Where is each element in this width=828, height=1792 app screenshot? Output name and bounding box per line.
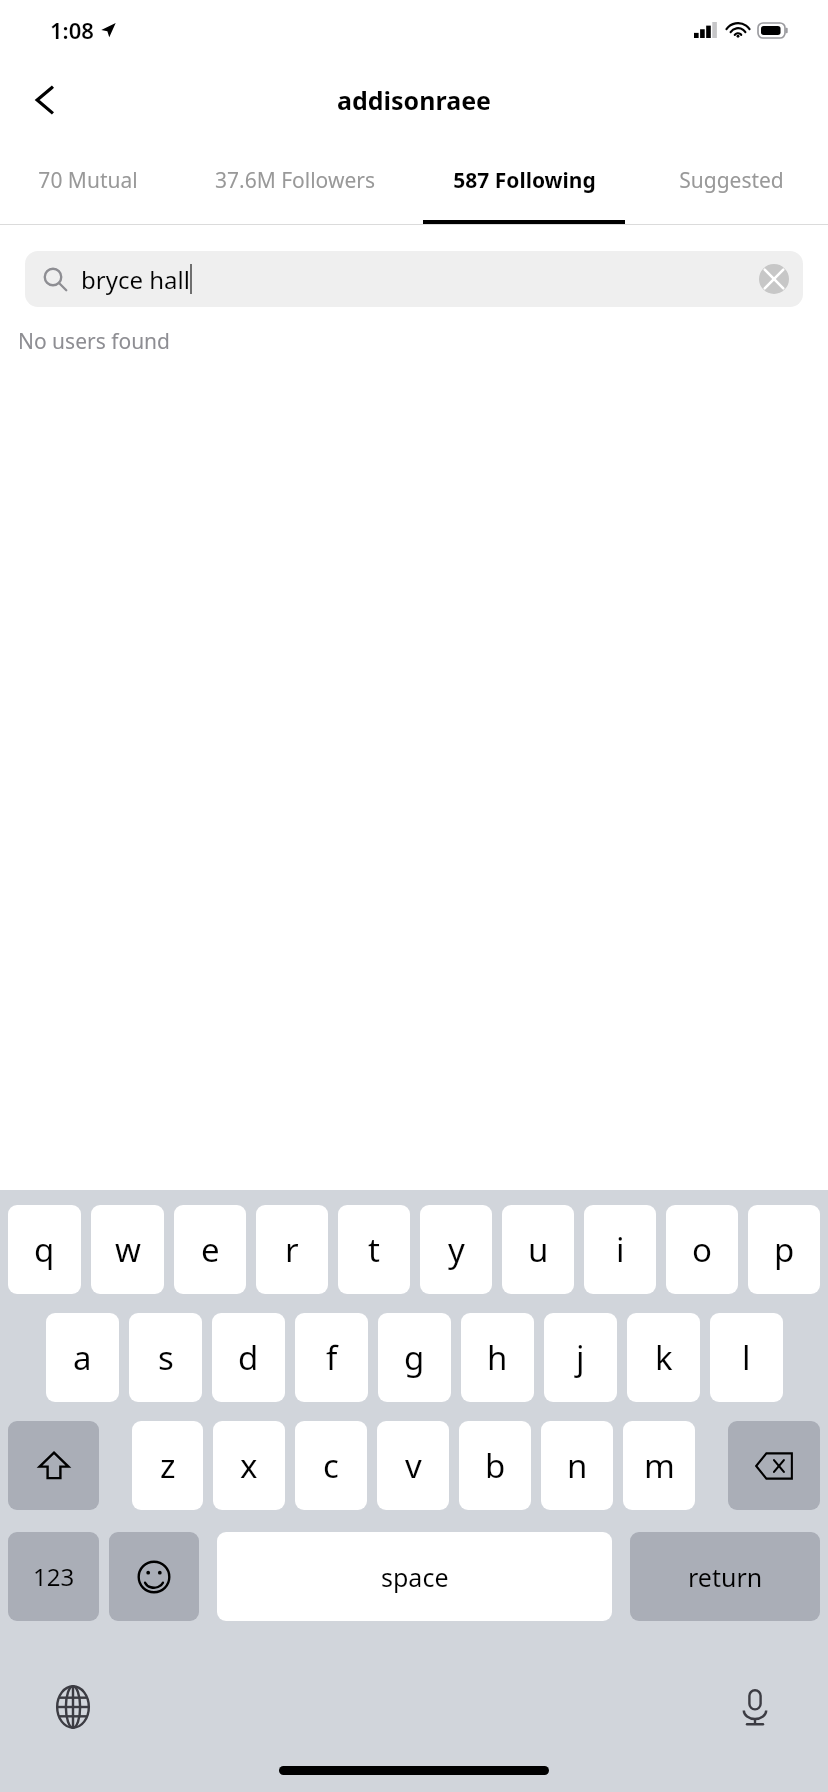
staticText: 37.6M Followers [215, 166, 375, 195]
staticText: y [448, 1227, 465, 1272]
staticText: return [688, 1560, 763, 1594]
button[interactable]: m [623, 1421, 695, 1510]
staticText: w [115, 1227, 141, 1272]
staticText: 70 Mutual [38, 166, 138, 195]
staticText: addisonraee [337, 83, 491, 117]
button[interactable]: v [377, 1421, 449, 1510]
button[interactable]: j [544, 1313, 617, 1402]
button[interactable]: Clear text [759, 264, 789, 294]
staticText: n [567, 1443, 588, 1488]
button[interactable]: bryce hall [25, 251, 803, 307]
staticText: e [201, 1227, 220, 1272]
button[interactable]: k [627, 1313, 700, 1402]
button[interactable]: p [748, 1205, 820, 1294]
staticText: a [73, 1335, 92, 1380]
staticText: Suggested [679, 166, 784, 195]
staticText: g [404, 1335, 425, 1380]
staticText: v [405, 1443, 422, 1488]
button[interactable]: Change keyboard [40, 1674, 106, 1740]
staticText: m [644, 1443, 675, 1488]
staticText: h [487, 1335, 508, 1380]
staticText: f [326, 1335, 338, 1380]
button[interactable]: y [420, 1205, 492, 1294]
staticText: bryce hall [81, 263, 190, 296]
staticText: x [240, 1443, 258, 1488]
button[interactable]: Shift [8, 1421, 99, 1510]
button[interactable]: return [630, 1532, 820, 1621]
staticText: q [34, 1227, 55, 1272]
button[interactable]: Back [10, 65, 80, 135]
button[interactable]: l [710, 1313, 783, 1402]
staticText: s [158, 1335, 174, 1380]
button[interactable]: r [256, 1205, 328, 1294]
button[interactable]: w [91, 1205, 164, 1294]
button[interactable]: t [338, 1205, 410, 1294]
button[interactable]: z [132, 1421, 203, 1510]
button[interactable]: Backspace [728, 1421, 820, 1510]
button[interactable]: g [378, 1313, 451, 1402]
staticText: r [285, 1227, 299, 1272]
staticText: k [655, 1335, 673, 1380]
button[interactable]: Suggested [634, 140, 828, 224]
staticText: No users found [18, 327, 170, 356]
staticText: c [323, 1443, 339, 1488]
button[interactable]: i [584, 1205, 656, 1294]
button[interactable]: n [541, 1421, 613, 1510]
staticText: o [692, 1227, 712, 1272]
button[interactable]: 70 Mutual [0, 140, 176, 224]
button[interactable]: c [295, 1421, 367, 1510]
staticText: l [742, 1335, 751, 1380]
staticText: d [238, 1335, 259, 1380]
staticText: j [576, 1335, 585, 1380]
button[interactable]: d [212, 1313, 285, 1402]
button[interactable]: e [174, 1205, 246, 1294]
staticText: space [381, 1560, 449, 1594]
button[interactable]: 587 Following [414, 140, 634, 224]
button[interactable]: Dictation [722, 1674, 788, 1740]
button[interactable]: Emoji [109, 1532, 199, 1621]
staticText: 123 [33, 1560, 75, 1593]
button[interactable]: o [666, 1205, 738, 1294]
button[interactable]: 123 [8, 1532, 99, 1621]
button[interactable]: q [8, 1205, 81, 1294]
staticText: 1:08 [50, 15, 94, 45]
staticText: p [774, 1227, 795, 1272]
staticText: b [485, 1443, 506, 1488]
staticText: i [616, 1227, 625, 1272]
button[interactable]: space [217, 1532, 612, 1621]
button[interactable]: a [46, 1313, 119, 1402]
button[interactable]: h [461, 1313, 534, 1402]
staticText: t [368, 1227, 380, 1272]
staticText: 587 Following [453, 166, 596, 195]
button[interactable]: u [502, 1205, 574, 1294]
button[interactable]: x [213, 1421, 285, 1510]
button[interactable]: b [459, 1421, 531, 1510]
button[interactable]: 37.6M Followers [176, 140, 414, 224]
staticText: z [160, 1443, 176, 1488]
staticText: u [528, 1227, 549, 1272]
button[interactable]: f [295, 1313, 368, 1402]
button[interactable]: s [129, 1313, 202, 1402]
